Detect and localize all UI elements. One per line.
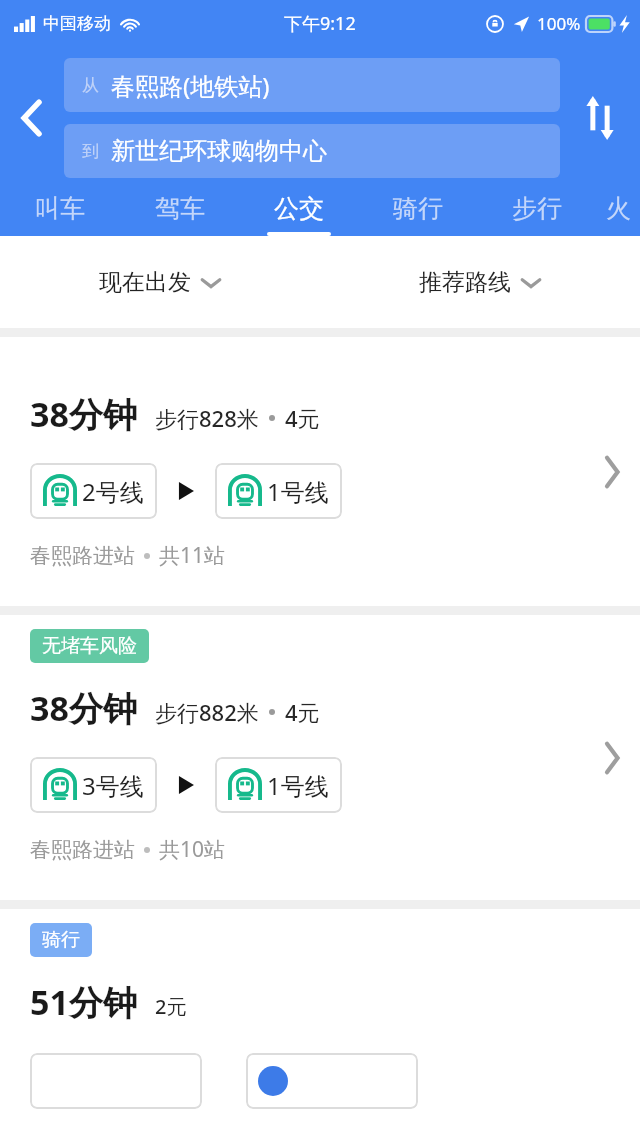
button[interactable]: 现在出发 [83, 258, 237, 307]
button[interactable]: 3号线 [30, 757, 157, 813]
button[interactable]: 38分钟 [0, 337, 640, 606]
staticText: 步行 [512, 193, 562, 224]
staticText: 推荐路线 [419, 268, 511, 297]
staticText: 1号线 [267, 769, 329, 802]
staticText: 共10站 [159, 835, 226, 864]
button[interactable]: Swap origin and destination [560, 63, 640, 173]
staticText: 38分钟 [30, 685, 137, 731]
staticText: 步行828米 [155, 403, 259, 433]
staticText: 驾车 [155, 193, 205, 224]
button[interactable] [246, 1053, 418, 1109]
staticText: 叫车 [35, 193, 85, 224]
staticText: 下午9:12 [284, 11, 356, 36]
staticText: 骑行 [393, 193, 443, 224]
staticText: 100% [537, 12, 581, 35]
button[interactable]: 2号线 [30, 463, 157, 519]
staticText: 2元 [155, 993, 187, 1020]
staticText: 骑行 [42, 928, 80, 952]
staticText: 步行882米 [155, 697, 259, 727]
button[interactable]: Back [0, 63, 64, 173]
button[interactable]: 驾车 [120, 178, 239, 236]
staticText: 到 [82, 141, 99, 162]
staticText: 共11站 [159, 541, 226, 570]
staticText: 3号线 [82, 769, 144, 802]
button[interactable]: 推荐路线 [403, 258, 557, 307]
staticText: 38分钟 [30, 391, 137, 437]
staticText: 4元 [285, 697, 320, 727]
staticText: 4元 [285, 403, 320, 433]
staticText: 新世纪环球购物中心 [111, 136, 327, 166]
staticText: 中国移动 [43, 13, 111, 34]
button[interactable]: 从 [64, 58, 560, 112]
button[interactable]: 火 [596, 178, 640, 236]
staticText: 春熙路(地铁站) [111, 69, 270, 102]
staticText: 公交 [274, 193, 324, 224]
button[interactable]: 步行 [477, 178, 596, 236]
button[interactable] [30, 1053, 202, 1109]
staticText: 春熙路进站 [30, 837, 135, 863]
button[interactable]: 骑行 [0, 909, 640, 1136]
staticText: 无堵车风险 [42, 634, 137, 658]
button[interactable]: 1号线 [215, 757, 342, 813]
staticText: 现在出发 [99, 268, 191, 297]
staticText: 51分钟 [30, 979, 137, 1025]
staticText: 从 [82, 75, 99, 96]
staticText: 火 [606, 193, 631, 224]
button[interactable]: 骑行 [358, 178, 477, 236]
button[interactable]: 叫车 [0, 178, 120, 236]
staticText: 1号线 [267, 475, 329, 508]
button[interactable]: 1号线 [215, 463, 342, 519]
button[interactable]: 到 [64, 124, 560, 178]
staticText: 2号线 [82, 475, 144, 508]
button[interactable]: 无堵车风险 [0, 615, 640, 900]
button[interactable]: 公交 [239, 178, 358, 236]
staticText: 春熙路进站 [30, 543, 135, 569]
